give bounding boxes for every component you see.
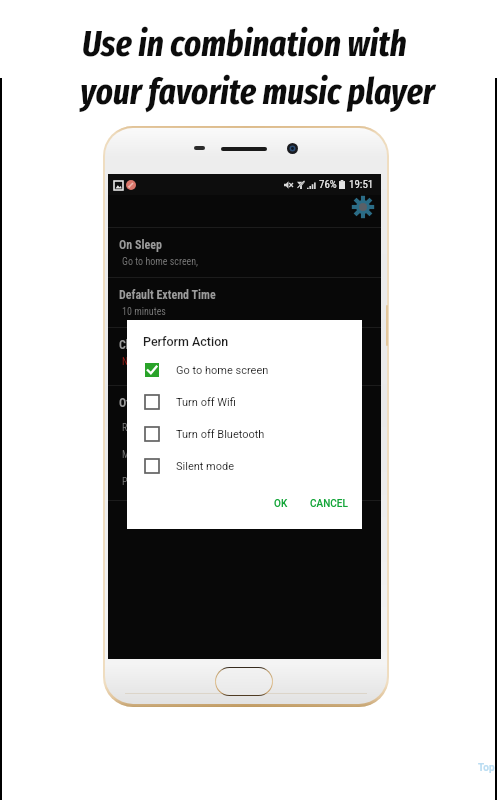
staticText: Default Extend Time (119, 288, 216, 302)
button[interactable]: Silent mode (127, 450, 362, 482)
staticText: Privacy policy (122, 476, 177, 488)
staticText: Perform Action (143, 334, 229, 349)
staticText: Silent mode (176, 460, 235, 473)
staticText: Turn off Bluetooth (176, 428, 265, 441)
staticText: Never turn off (122, 356, 177, 368)
button[interactable]: Turn off Wifi (127, 386, 362, 418)
staticText: 10 minutes (122, 306, 166, 318)
staticText: More apps (122, 449, 164, 461)
button[interactable]: Turn off Bluetooth (127, 418, 362, 450)
button[interactable]: On Sleep (108, 227, 381, 277)
button[interactable]: Settings (351, 195, 375, 219)
staticText: On Sleep (119, 238, 162, 252)
staticText: Use in combination with (82, 22, 407, 65)
staticText: Top (478, 762, 495, 774)
staticText: your favorite music player (80, 70, 435, 113)
button[interactable]: Rate this app (108, 414, 381, 441)
staticText: Other (119, 396, 146, 410)
staticText: Turn off Wifi (176, 396, 236, 409)
button[interactable]: OK (263, 492, 299, 516)
staticText: Rate this app (122, 422, 174, 434)
button[interactable]: Privacy policy (108, 468, 381, 495)
staticText: Go to home screen, (122, 256, 199, 268)
button[interactable]: More apps (108, 441, 381, 468)
staticText: Go to home screen (176, 364, 269, 377)
staticText: Charging Behaviour (119, 338, 214, 352)
button[interactable]: CANCEL (299, 492, 359, 516)
staticText: 76% (319, 178, 337, 191)
staticText: 19:51 (349, 178, 374, 191)
button[interactable]: Default Extend Time (108, 277, 381, 327)
button[interactable]: Charging Behaviour (108, 327, 381, 385)
button[interactable]: Go to home screen (127, 354, 362, 386)
